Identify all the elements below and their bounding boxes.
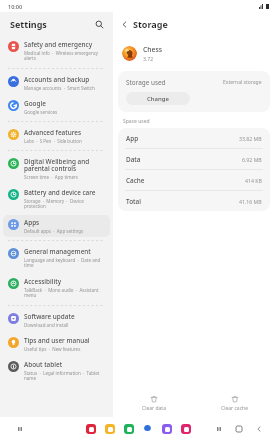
staticText: Space used: [123, 118, 150, 125]
staticText: 414 KB: [245, 177, 262, 184]
staticText: 6.92 MB: [242, 156, 262, 163]
button[interactable]: App 1: [85, 423, 96, 434]
staticText: External storage: [223, 79, 262, 86]
staticText: Default apps · App settings: [24, 228, 84, 234]
button[interactable]: Accessibility: [3, 274, 110, 302]
button[interactable]: Tips and user manual: [3, 333, 110, 355]
staticText: Download and install: [24, 322, 69, 328]
staticText: About tablet: [24, 360, 63, 369]
button[interactable]: Battery and device care: [3, 185, 110, 213]
staticText: Accounts and backup: [24, 75, 90, 84]
staticText: Advanced features: [24, 128, 82, 137]
button[interactable]: Data: [118, 149, 270, 170]
button[interactable]: App: [118, 128, 270, 149]
staticText: Accessibility: [24, 277, 62, 286]
staticText: 41.16 MB: [239, 198, 262, 205]
button[interactable]: App 3: [123, 423, 134, 434]
button[interactable]: About tablet: [3, 357, 110, 385]
button[interactable]: App 5: [161, 423, 172, 434]
button[interactable]: Cache: [118, 170, 270, 191]
staticText: Clear cache: [221, 405, 248, 412]
staticText: 10:00: [8, 3, 23, 10]
staticText: Data: [126, 155, 141, 164]
staticText: Labs · S Pen · Side button: [24, 138, 82, 144]
button[interactable]: Safety and emergency: [3, 37, 110, 65]
staticText: TalkBack · Mono audio · Assistant menu: [24, 287, 106, 299]
button[interactable]: Software update: [3, 309, 110, 331]
staticText: Screen time · App timers: [24, 174, 78, 180]
staticText: Tips and user manual: [24, 336, 90, 345]
staticText: Cache: [126, 176, 145, 185]
button[interactable]: Digital Wellbeing and parental controls: [3, 154, 110, 183]
staticText: Useful tips · New features: [24, 346, 81, 352]
button[interactable]: Clear cache: [194, 393, 275, 414]
staticText: Status · Legal information · Tablet name: [24, 370, 106, 382]
button[interactable]: App 2: [104, 423, 115, 434]
staticText: Google services: [24, 109, 58, 115]
button[interactable]: Google: [3, 96, 110, 118]
staticText: Google: [24, 99, 46, 108]
staticText: App: [126, 134, 139, 143]
staticText: Storage: [133, 18, 168, 30]
button[interactable]: Back: [252, 422, 265, 435]
button[interactable]: General management: [3, 244, 110, 272]
button[interactable]: App 4: [142, 423, 153, 434]
staticText: Medical info · Wireless emergency alerts: [24, 50, 106, 62]
staticText: 33.82 MB: [239, 135, 262, 142]
staticText: Language and keyboard · Date and time: [24, 257, 106, 269]
button[interactable]: App drawer: [14, 423, 26, 435]
staticText: Storage · Memory · Device protection: [24, 198, 106, 210]
staticText: Total: [126, 197, 141, 206]
button[interactable]: App 6: [180, 423, 191, 434]
button[interactable]: Clear data: [113, 393, 194, 414]
button[interactable]: Home: [232, 422, 245, 435]
staticText: Safety and emergency: [24, 40, 93, 49]
staticText: Settings: [10, 18, 47, 30]
button[interactable]: Total: [118, 191, 270, 211]
button[interactable]: Accounts and backup: [3, 72, 110, 94]
button[interactable]: Search settings: [92, 17, 106, 31]
button[interactable]: Change: [126, 92, 190, 105]
button[interactable]: Recent apps: [212, 422, 225, 435]
staticText: Storage used: [126, 78, 166, 87]
staticText: Clear data: [142, 405, 166, 412]
staticText: Manage accounts · Smart Switch: [24, 85, 95, 91]
staticText: Software update: [24, 312, 75, 321]
button[interactable]: Navigate up: [117, 17, 131, 31]
staticText: Change: [147, 95, 169, 103]
staticText: General management: [24, 247, 91, 256]
staticText: 3.72: [143, 55, 154, 62]
button[interactable]: Advanced features: [3, 125, 110, 147]
staticText: Battery and device care: [24, 188, 96, 197]
button[interactable]: Apps: [3, 215, 110, 237]
staticText: Apps: [24, 218, 40, 227]
staticText: Chess: [143, 45, 163, 54]
staticText: Digital Wellbeing and parental controls: [24, 157, 106, 173]
